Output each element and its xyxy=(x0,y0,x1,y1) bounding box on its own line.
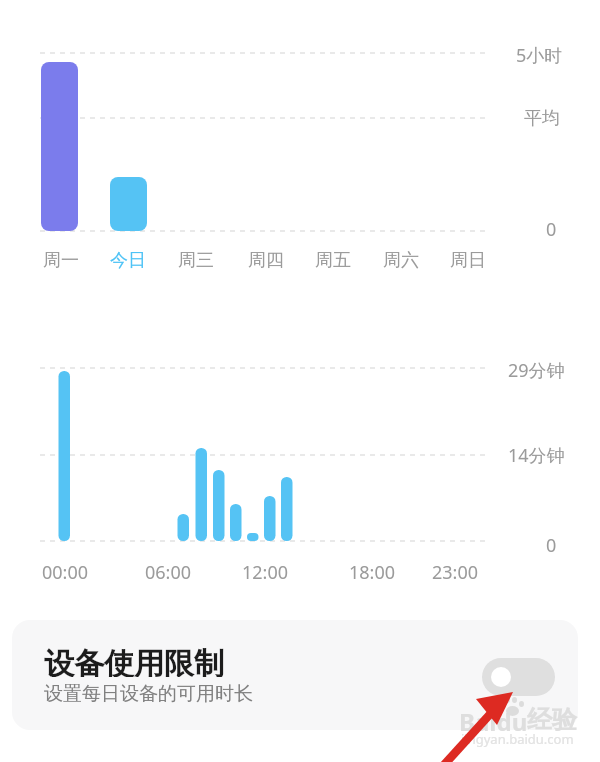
button[interactable] xyxy=(12,620,578,730)
staticText: 0 xyxy=(546,217,557,242)
staticText: 周三 xyxy=(178,249,214,272)
button[interactable] xyxy=(482,658,555,696)
button[interactable]: 今日 xyxy=(48,246,208,274)
staticText: 23:00 xyxy=(432,560,479,585)
staticText: 经验 xyxy=(527,704,577,735)
staticText: 12:00 xyxy=(242,560,289,585)
staticText: 5小时 xyxy=(516,43,563,68)
staticText: 00:00 xyxy=(42,560,89,585)
button[interactable]: 周三 xyxy=(116,246,276,274)
button[interactable]: 周六 xyxy=(321,246,481,274)
staticText: Baidu xyxy=(459,705,528,737)
staticText: 今日 xyxy=(110,249,146,272)
staticText: 周四 xyxy=(248,249,284,272)
button[interactable]: 周五 xyxy=(253,246,413,274)
staticText: 设置每日设备的可用时长 xyxy=(44,682,253,706)
button[interactable]: 周日 xyxy=(388,246,548,274)
staticText: 29分钟 xyxy=(508,358,565,383)
staticText: 周一 xyxy=(43,249,79,272)
staticText: 周五 xyxy=(315,249,351,272)
staticText: 06:00 xyxy=(145,560,192,585)
staticText: 14分钟 xyxy=(508,443,565,468)
staticText: 平均 xyxy=(524,107,560,130)
button[interactable]: 周一 xyxy=(0,246,141,274)
staticText: 周六 xyxy=(383,249,419,272)
staticText: 设备使用限制 xyxy=(44,645,224,677)
button[interactable]: 周四 xyxy=(186,246,346,274)
staticText: 0 xyxy=(546,533,557,558)
staticText: 18:00 xyxy=(349,560,396,585)
staticText: jingyan.baidu.com xyxy=(461,730,574,748)
staticText: 周日 xyxy=(450,249,486,272)
